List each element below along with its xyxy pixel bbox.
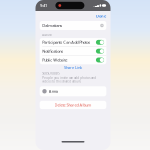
staticText: Dalmatians — [42, 23, 62, 28]
button[interactable]: Participants Can Add Photos — [40, 38, 106, 46]
staticText: Done — [96, 13, 106, 19]
staticText: ✕ — [101, 24, 103, 27]
staticText: 9:41 — [40, 3, 47, 8]
staticText: ▁▃▅ — [93, 4, 99, 7]
button[interactable]: Done — [94, 12, 108, 20]
button[interactable]: Public Website — [40, 56, 106, 64]
staticText: Anna — [49, 89, 58, 94]
staticText: People you invite can add photos and vid… — [42, 76, 96, 83]
button[interactable]: Share Link — [35, 64, 110, 71]
staticText: Public Website — [42, 57, 67, 63]
staticText: Share Link — [64, 65, 82, 70]
button[interactable]: Delete Shared Album — [35, 101, 110, 109]
staticText: Participants Can Add Photos — [42, 40, 90, 45]
button[interactable]: Dalmatians — [35, 21, 110, 30]
staticText: Notifications — [42, 48, 63, 54]
staticText: Delete Shared Album — [54, 102, 91, 108]
staticText: SUBSCRIBERS — [42, 72, 59, 75]
button[interactable]: Notifications — [40, 47, 106, 55]
staticText: ALBUM — [42, 33, 51, 37]
button[interactable]: Anna — [35, 86, 110, 96]
